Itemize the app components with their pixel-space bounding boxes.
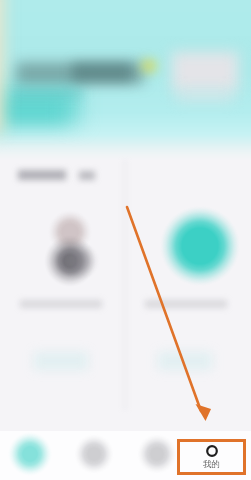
button[interactable]: Home: [12, 444, 48, 466]
staticText: 我的: [203, 459, 220, 470]
button[interactable]: Discover: [76, 444, 112, 466]
button[interactable]: 我的: [177, 439, 246, 475]
button[interactable]: Messages: [139, 444, 175, 466]
